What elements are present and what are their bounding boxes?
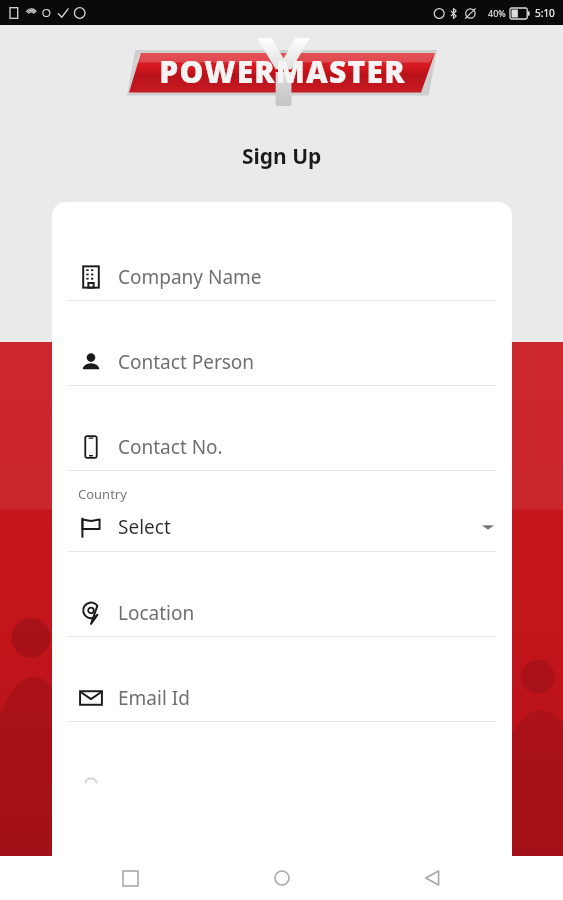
staticText: Country: [78, 485, 127, 503]
button[interactable]: Home: [260, 856, 304, 900]
button[interactable]: Contact No.: [52, 424, 512, 470]
button[interactable]: Back: [411, 856, 455, 900]
staticText: POWERMASTER: [159, 51, 406, 92]
staticText: 5:10: [535, 6, 555, 20]
button[interactable]: Location: [52, 590, 512, 636]
button[interactable]: Country: [52, 485, 512, 551]
staticText: Email Id: [118, 685, 190, 711]
button[interactable]: Company Name: [52, 254, 512, 300]
button[interactable]: Contact Person: [52, 339, 512, 385]
staticText: Select: [118, 514, 171, 540]
staticText: Contact No.: [118, 434, 223, 460]
button[interactable]: Recent apps: [108, 856, 152, 900]
staticText: 40%: [488, 7, 506, 19]
staticText: Sign Up: [242, 142, 322, 171]
staticText: Contact Person: [118, 349, 255, 375]
staticText: Company Name: [118, 264, 262, 290]
button[interactable]: Email Id: [52, 675, 512, 721]
staticText: Location: [118, 600, 195, 626]
